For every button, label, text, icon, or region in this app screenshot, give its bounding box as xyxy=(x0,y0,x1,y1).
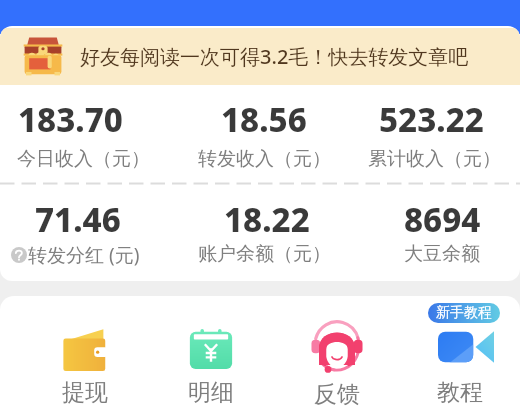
staticText: 账户余额（元） xyxy=(198,242,331,266)
staticText: 8694 xyxy=(404,197,481,242)
staticText: 18.22 xyxy=(224,197,310,242)
button[interactable]: 好友每阅读一次可得3.2毛！快去转发文章吧 xyxy=(0,28,520,85)
staticText: 累计收入（元） xyxy=(368,147,501,171)
staticText: 提现 xyxy=(62,378,108,407)
staticText: 明细 xyxy=(188,378,234,407)
button[interactable]: 523.22 xyxy=(347,97,520,171)
button[interactable]: Withdraw xyxy=(22,296,148,407)
staticText: 今日收入（元） xyxy=(17,147,150,171)
staticText: 71.46 xyxy=(35,197,121,242)
staticText: 183.70 xyxy=(18,97,123,142)
staticText: 反馈 xyxy=(314,380,360,407)
staticText: 18.56 xyxy=(221,97,307,142)
button[interactable]: Details xyxy=(148,296,274,407)
button[interactable]: Tutorial xyxy=(400,296,520,407)
button[interactable]: 8694 xyxy=(347,197,520,266)
button[interactable]: 183.70 xyxy=(0,97,174,171)
staticText: 转发收入（元） xyxy=(198,147,331,171)
staticText: 教程 xyxy=(437,378,483,407)
button[interactable]: 18.56 xyxy=(174,97,347,171)
button[interactable]: Feedback xyxy=(274,296,400,407)
staticText: 大豆余额 xyxy=(404,242,480,266)
staticText: 好友每阅读一次可得3.2毛！快去转发文章吧 xyxy=(80,43,469,70)
staticText: 新手教程 xyxy=(436,304,492,322)
button[interactable]: 71.46 xyxy=(0,197,174,268)
button[interactable]: 18.22 xyxy=(174,197,347,266)
staticText: 转发分红 (元) xyxy=(28,242,140,268)
staticText: 523.22 xyxy=(379,97,484,142)
